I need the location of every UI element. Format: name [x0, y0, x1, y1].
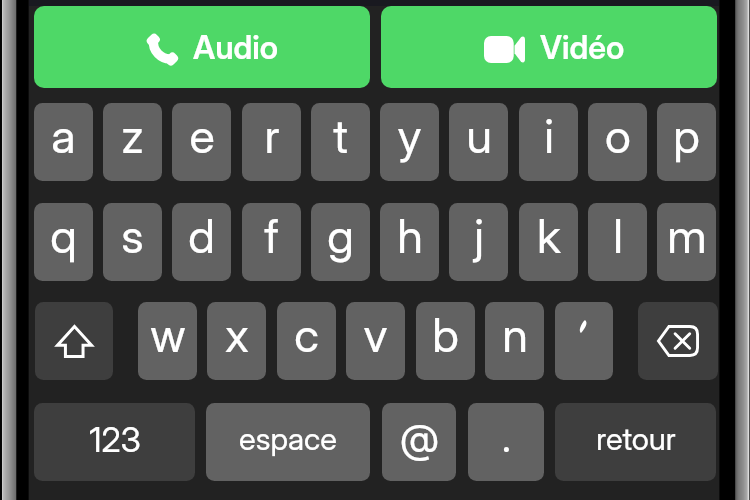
button[interactable]: e	[172, 103, 231, 181]
staticText: q	[50, 207, 77, 264]
button[interactable]: x	[207, 302, 266, 380]
staticText: .	[502, 413, 511, 461]
staticText: Audio	[193, 28, 278, 67]
staticText: t	[333, 107, 348, 164]
button[interactable]: t	[311, 103, 370, 181]
button[interactable]: h	[380, 203, 439, 281]
button[interactable]: w	[138, 302, 197, 380]
staticText: c	[294, 306, 319, 363]
button[interactable]: g	[311, 203, 370, 281]
staticText: a	[51, 107, 76, 164]
button[interactable]: u	[449, 103, 508, 181]
button[interactable]: a	[34, 103, 93, 181]
button[interactable]: retour	[555, 403, 716, 481]
button[interactable]: b	[416, 302, 475, 380]
staticText: r	[264, 107, 280, 164]
staticText: o	[605, 107, 631, 164]
button[interactable]: .	[468, 403, 544, 481]
staticText: m	[667, 207, 707, 264]
staticText: v	[363, 306, 388, 363]
button[interactable]: c	[277, 302, 336, 380]
button[interactable]: o	[588, 103, 647, 181]
button[interactable]: Vidéo	[381, 6, 717, 88]
button[interactable]: q	[34, 203, 93, 281]
button[interactable]: p	[657, 103, 716, 181]
button[interactable]: @	[382, 403, 456, 481]
staticText: s	[121, 207, 144, 264]
button[interactable]: v	[346, 302, 405, 380]
staticText: @	[400, 414, 439, 462]
button[interactable]: i	[519, 103, 578, 181]
staticText: 123	[89, 419, 141, 460]
button[interactable]: l	[588, 203, 647, 281]
button[interactable]: d	[172, 203, 231, 281]
staticText: p	[673, 107, 700, 164]
staticText: l	[613, 207, 623, 264]
staticText: j	[474, 207, 484, 264]
button[interactable]: Backspace	[638, 302, 718, 380]
staticText: w	[150, 306, 186, 363]
staticText: u	[466, 107, 492, 164]
staticText: espace	[239, 420, 337, 458]
staticText: d	[188, 207, 215, 264]
staticText: y	[397, 107, 422, 164]
button[interactable]: n	[485, 302, 544, 380]
staticText: f	[264, 207, 279, 264]
button[interactable]: r	[242, 103, 301, 181]
staticText: x	[225, 306, 249, 363]
staticText: b	[432, 306, 459, 363]
staticText: z	[121, 107, 144, 164]
button[interactable]: 123	[34, 403, 195, 481]
button[interactable]: Apostrophe	[555, 302, 613, 380]
staticText: Vidéo	[540, 28, 625, 67]
button[interactable]: j	[449, 203, 508, 281]
button[interactable]: Audio	[34, 6, 370, 88]
button[interactable]: k	[519, 203, 578, 281]
button[interactable]: f	[242, 203, 301, 281]
button[interactable]: m	[657, 203, 716, 281]
button[interactable]: z	[103, 103, 162, 181]
button[interactable]: s	[103, 203, 162, 281]
staticText: n	[502, 306, 528, 363]
staticText: h	[397, 207, 423, 264]
button[interactable]: Shift	[35, 302, 113, 380]
staticText: k	[537, 207, 561, 264]
button[interactable]: espace	[206, 403, 370, 481]
staticText: i	[544, 107, 554, 164]
staticText: e	[189, 107, 215, 164]
staticText: g	[327, 207, 354, 264]
button[interactable]: y	[380, 103, 439, 181]
staticText: retour	[596, 420, 676, 458]
